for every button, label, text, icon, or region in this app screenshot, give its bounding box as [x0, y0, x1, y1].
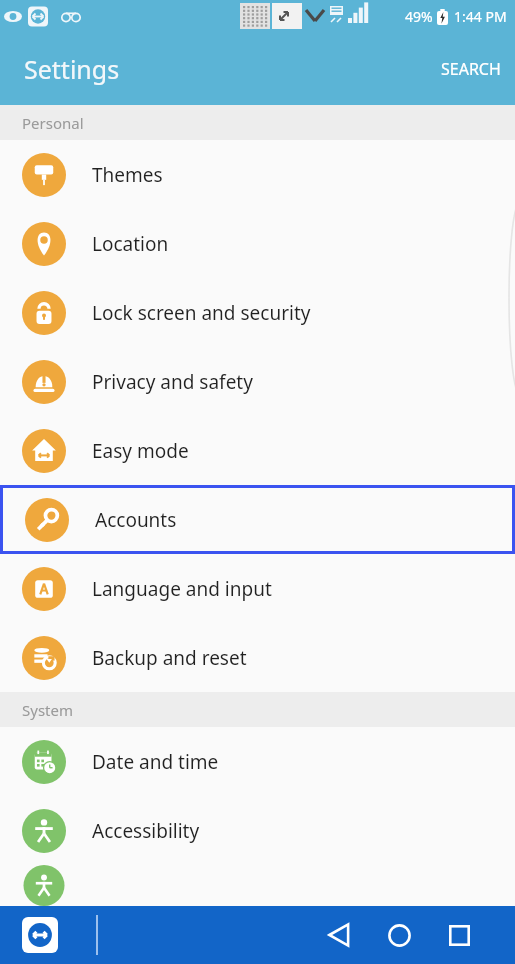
staticText: Themes: [92, 162, 163, 188]
staticText: Lock screen and security: [92, 300, 311, 326]
staticText: Date and time: [92, 749, 219, 775]
staticText: Settings: [24, 52, 120, 86]
button[interactable]: Home: [369, 906, 429, 964]
button[interactable]: SEARCH: [427, 48, 515, 90]
button[interactable]: Back: [309, 906, 369, 964]
button[interactable]: Accessibility: [0, 796, 515, 865]
staticText: Accounts: [95, 507, 177, 533]
button[interactable]: Easy mode: [0, 416, 515, 485]
staticText: Backup and reset: [92, 645, 247, 671]
button[interactable]: Lock screen and security: [0, 278, 515, 347]
staticText: System: [22, 700, 73, 720]
staticText: 1:44 PM: [454, 7, 507, 26]
staticText: Location: [92, 231, 169, 257]
staticText: SEARCH: [441, 58, 501, 80]
button[interactable]: Date and time: [0, 727, 515, 796]
staticText: Language and input: [92, 576, 272, 602]
staticText: 49%: [405, 7, 433, 26]
staticText: Privacy and safety: [92, 369, 253, 395]
button[interactable]: Recents: [429, 906, 489, 964]
button[interactable]: Backup and reset: [0, 623, 515, 692]
staticText: Personal: [22, 113, 84, 133]
button[interactable]: Accounts: [3, 488, 512, 551]
button[interactable]: Location: [0, 209, 515, 278]
staticText: Easy mode: [92, 438, 189, 464]
button[interactable]: Themes: [0, 140, 515, 209]
staticText: Accessibility: [92, 818, 200, 844]
button[interactable]: Language and input: [0, 554, 515, 623]
button[interactable]: Privacy and safety: [0, 347, 515, 416]
button[interactable]: [0, 865, 515, 906]
button[interactable]: TeamViewer: [22, 917, 58, 953]
